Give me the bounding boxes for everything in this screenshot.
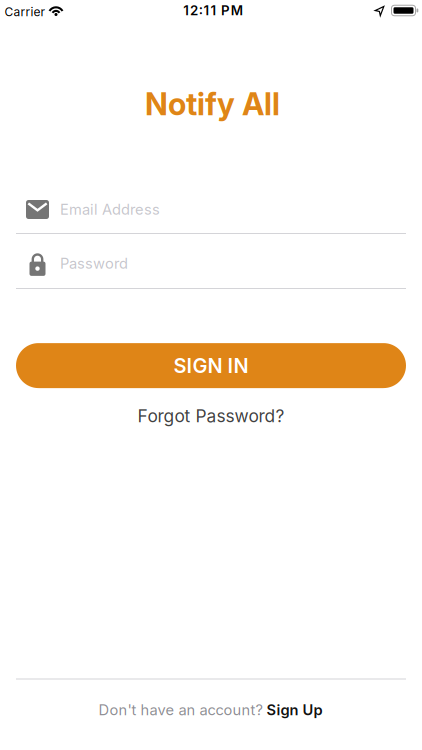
- staticText: Carrier: [4, 5, 45, 19]
- staticText: Sign Up: [266, 701, 322, 719]
- staticText: SIGN IN: [173, 354, 248, 377]
- staticText: Don't have an account?: [98, 701, 262, 719]
- staticText: Password: [60, 255, 128, 272]
- staticText: Email Address: [60, 201, 160, 218]
- staticText: 12:11 PM: [183, 3, 243, 18]
- button[interactable]: Forgot Password?: [137, 406, 284, 426]
- staticText: Notify All: [145, 86, 280, 122]
- button[interactable]: Password: [0, 239, 422, 287]
- button[interactable]: Sign Up: [266, 701, 322, 719]
- button[interactable]: SIGN IN: [16, 343, 406, 388]
- staticText: Forgot Password?: [137, 406, 284, 426]
- button[interactable]: Email Address: [0, 185, 422, 233]
